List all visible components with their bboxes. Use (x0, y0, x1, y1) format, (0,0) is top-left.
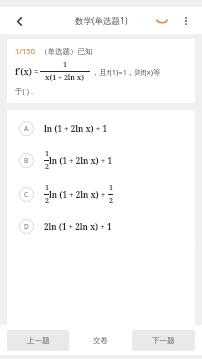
staticText: x(1 + 2ln x) (45, 73, 85, 83)
button[interactable]: Back (8, 10, 30, 32)
staticText: ln (1 + 2ln x) + 1 (49, 155, 112, 166)
button[interactable]: 上一题 (7, 330, 69, 351)
staticText: 1/150 (15, 46, 35, 56)
staticText: 交卷 (93, 336, 108, 345)
button[interactable]: D (7, 211, 195, 241)
button[interactable]: A (7, 113, 195, 143)
staticText: （单选题）已知 (40, 47, 93, 56)
staticText: 2 (45, 196, 49, 206)
staticText: 1 (45, 183, 49, 193)
button[interactable]: 下一题 (132, 330, 195, 351)
staticText: 2 (109, 196, 113, 206)
button[interactable]: 交卷 (69, 330, 132, 351)
staticText: 数学(单选题1) (75, 15, 128, 27)
staticText: 下一题 (152, 336, 175, 345)
staticText: 1 (109, 183, 113, 193)
button[interactable]: More options (176, 11, 196, 31)
staticText: 1 (63, 60, 67, 70)
staticText: 于( ) . (15, 86, 33, 96)
staticText: ln (1 + 2ln x) + 1 (44, 123, 107, 134)
button[interactable]: Collect (152, 11, 172, 31)
staticText: ，且f(1)=1，则f(x)等 (92, 67, 161, 77)
staticText: D (24, 222, 29, 231)
staticText: 2ln (1 + 2ln x) + 1 (44, 221, 112, 232)
staticText: ln (1 + 2ln x) + (49, 189, 108, 200)
staticText: f′(x) = (15, 66, 39, 77)
button[interactable]: C (7, 177, 195, 211)
staticText: 1 (45, 149, 49, 159)
staticText: C (24, 190, 29, 199)
button[interactable]: B (7, 143, 195, 177)
staticText: A (24, 124, 29, 133)
staticText: B (24, 156, 29, 165)
staticText: 上一题 (27, 336, 50, 345)
staticText: 2 (45, 162, 49, 172)
